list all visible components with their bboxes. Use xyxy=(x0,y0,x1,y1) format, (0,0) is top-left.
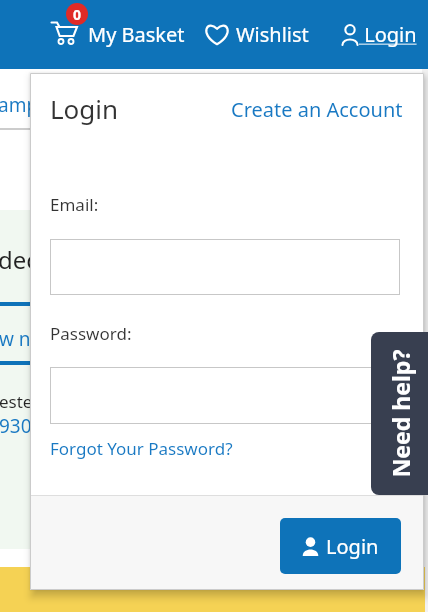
staticText: amp xyxy=(0,92,39,118)
button[interactable]: Forgot Your Password? xyxy=(50,437,233,460)
button[interactable]: Need help? xyxy=(371,332,428,495)
staticText: 0 xyxy=(73,5,82,24)
button[interactable] xyxy=(50,367,400,424)
staticText: este xyxy=(0,390,33,413)
button[interactable]: Login xyxy=(280,518,401,574)
button[interactable]: Wishlist xyxy=(205,0,309,69)
button[interactable]: 0 xyxy=(50,0,190,69)
staticText: Wishlist xyxy=(236,21,309,48)
staticText: w ne xyxy=(0,326,42,352)
staticText: Password: xyxy=(50,322,132,345)
button[interactable] xyxy=(50,239,400,295)
button[interactable]: Login xyxy=(341,0,417,69)
staticText: Login xyxy=(326,533,379,560)
button[interactable]: Create an Account xyxy=(231,96,403,123)
staticText: Login xyxy=(50,91,119,126)
staticText: dec xyxy=(0,243,38,276)
staticText: Login xyxy=(359,21,417,48)
staticText: Email: xyxy=(50,193,99,216)
staticText: Need help? xyxy=(384,338,415,488)
staticText: 930 xyxy=(0,413,32,439)
staticText: My Basket xyxy=(88,21,185,48)
